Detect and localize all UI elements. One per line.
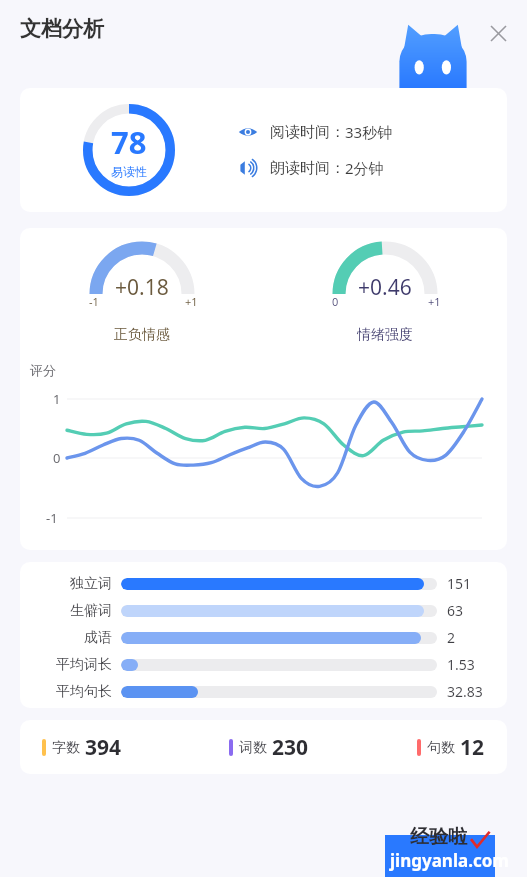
staticText: +0.18 <box>115 273 169 302</box>
button[interactable]: 阅读时间： <box>238 122 393 142</box>
staticText: 0 <box>332 294 339 309</box>
staticText: 生僻词 <box>70 602 112 620</box>
staticText: 32.83 <box>447 682 483 701</box>
button[interactable]: 句数 <box>417 733 485 762</box>
staticText: 成语 <box>84 629 112 647</box>
staticText: +1 <box>428 294 441 309</box>
staticText: 字数 <box>52 739 80 757</box>
staticText: 平均句长 <box>56 683 112 701</box>
staticText: 1.53 <box>447 655 475 674</box>
staticText: 经验啦 <box>410 825 467 849</box>
button[interactable]: 词数 <box>229 733 309 762</box>
staticText: 平均词长 <box>56 656 112 674</box>
button[interactable]: 平均词长 <box>20 653 507 676</box>
button[interactable]: 平均句长 <box>20 680 507 703</box>
button[interactable]: 字数 <box>42 733 122 762</box>
staticText: 78 <box>111 121 147 163</box>
staticText: 易读性 <box>111 164 147 179</box>
staticText: 阅读时间： <box>270 123 345 142</box>
staticText: 评分 <box>30 362 56 378</box>
staticText: 文档分析 <box>20 16 104 42</box>
button[interactable]: 生僻词 <box>20 599 507 622</box>
button[interactable]: 朗读时间： <box>238 158 384 178</box>
staticText: 2分钟 <box>345 158 384 178</box>
staticText: 词数 <box>239 739 267 757</box>
staticText: 230 <box>272 733 309 762</box>
staticText: +0.46 <box>358 273 412 302</box>
staticText: 12 <box>460 733 485 762</box>
staticText: jingyanla.com <box>390 849 509 872</box>
staticText: -1 <box>89 294 99 309</box>
staticText: 情绪强度 <box>357 326 413 344</box>
staticText: 正负情感 <box>114 326 170 344</box>
staticText: 33秒钟 <box>345 122 393 142</box>
staticText: 394 <box>85 733 122 762</box>
staticText: -1 <box>46 509 58 527</box>
staticText: 1 <box>53 390 61 408</box>
button[interactable]: Close <box>483 18 513 48</box>
staticText: 0 <box>53 449 61 467</box>
staticText: 朗读时间： <box>270 159 345 178</box>
button[interactable]: 成语 <box>20 626 507 649</box>
staticText: +1 <box>185 294 198 309</box>
staticText: 151 <box>447 574 472 593</box>
button[interactable]: 独立词 <box>20 572 507 595</box>
staticText: 2 <box>447 628 456 647</box>
staticText: 句数 <box>427 739 455 757</box>
staticText: 63 <box>447 601 464 620</box>
staticText: 独立词 <box>70 575 112 593</box>
